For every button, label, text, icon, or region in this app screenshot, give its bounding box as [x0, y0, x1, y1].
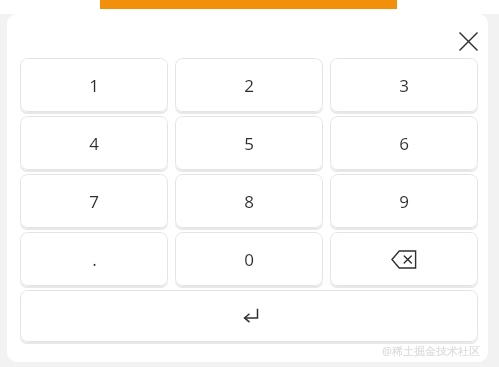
staticText: 8 [244, 190, 254, 213]
button[interactable]: Enter [20, 290, 478, 342]
staticText: 0 [244, 248, 254, 271]
button[interactable]: 5 [175, 116, 323, 170]
button[interactable]: 7 [20, 174, 168, 228]
staticText: 2 [244, 74, 254, 97]
button[interactable]: 8 [175, 174, 323, 228]
staticText: 4 [89, 132, 99, 155]
staticText: 7 [89, 190, 99, 213]
button[interactable]: 2 [175, 58, 323, 112]
button[interactable]: 0 [175, 232, 323, 286]
button[interactable]: Backspace [330, 232, 478, 286]
button[interactable]: . [20, 232, 168, 286]
button[interactable]: Close keyboard [447, 20, 488, 62]
button[interactable]: 3 [330, 58, 478, 112]
button[interactable]: 6 [330, 116, 478, 170]
staticText: 9 [399, 190, 409, 213]
staticText: 6 [399, 132, 409, 155]
staticText: 3 [399, 74, 409, 97]
staticText: 5 [244, 132, 254, 155]
button[interactable]: 4 [20, 116, 168, 170]
staticText: @稀土掘金技术社区 [382, 343, 480, 358]
button[interactable]: 1 [20, 58, 168, 112]
staticText: . [92, 248, 97, 271]
button[interactable]: 9 [330, 174, 478, 228]
staticText: 1 [89, 74, 99, 97]
